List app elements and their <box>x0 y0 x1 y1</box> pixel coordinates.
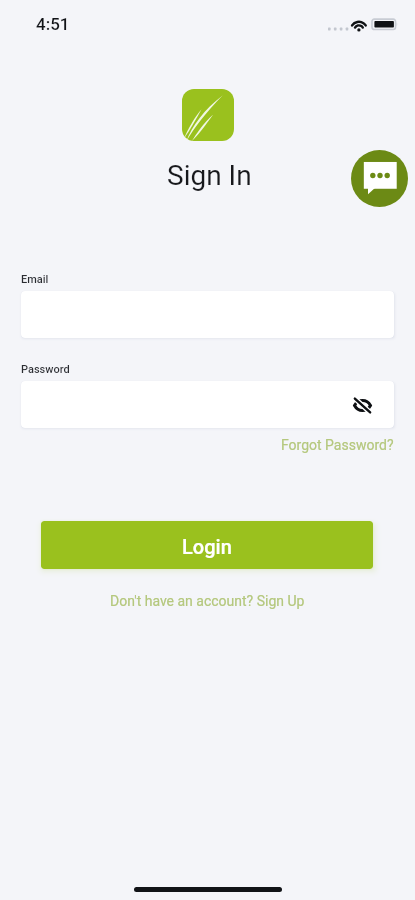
staticText: 4:51 <box>36 14 70 34</box>
button[interactable]: Show password <box>21 381 394 428</box>
button[interactable]: Chat support <box>351 150 408 207</box>
staticText: Sign In <box>167 159 252 192</box>
staticText: Email <box>21 273 49 286</box>
button[interactable]: Forgot Password? <box>281 437 394 453</box>
button[interactable]: Show password <box>350 393 374 417</box>
staticText: Password <box>21 363 70 376</box>
button[interactable]: Don't have an account? Sign Up <box>110 593 305 609</box>
staticText: Forgot Password? <box>281 437 394 453</box>
button[interactable]: Login <box>41 521 373 569</box>
staticText: Login <box>182 535 232 558</box>
staticText: Don't have an account? Sign Up <box>110 593 305 609</box>
